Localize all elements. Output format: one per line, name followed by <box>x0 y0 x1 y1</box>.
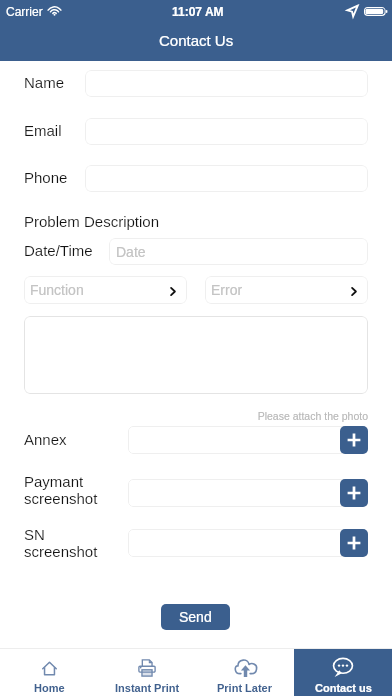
button[interactable]: Contact us <box>294 649 392 696</box>
button[interactable]: Home <box>0 649 98 696</box>
staticText: Problem Description <box>24 213 160 230</box>
staticText: Email <box>24 122 62 139</box>
button[interactable] <box>85 118 368 145</box>
button[interactable]: Function <box>24 276 187 304</box>
staticText: Function <box>30 282 84 298</box>
button[interactable] <box>24 316 368 394</box>
staticText: Please attach the photo <box>0 410 368 422</box>
button[interactable] <box>128 426 368 454</box>
button[interactable] <box>85 165 368 192</box>
staticText: Phone <box>24 169 68 186</box>
button[interactable] <box>128 529 368 557</box>
staticText: 11:07 AM <box>172 5 224 18</box>
button[interactable]: Add attachment <box>340 529 368 557</box>
staticText: SN <box>24 526 45 543</box>
staticText: screenshot <box>24 490 98 507</box>
staticText: Date <box>116 244 146 260</box>
button[interactable]: Add attachment <box>340 479 368 507</box>
button[interactable]: Send <box>161 604 230 630</box>
staticText: Date/Time <box>24 242 93 259</box>
button[interactable]: Error <box>205 276 368 304</box>
button[interactable]: Add attachment <box>340 426 368 454</box>
button[interactable]: Instant Print <box>98 649 196 696</box>
staticText: Print Later <box>217 682 273 694</box>
button[interactable] <box>85 70 368 97</box>
staticText: Contact us <box>315 682 372 694</box>
staticText: Contact Us <box>159 32 234 49</box>
staticText: screenshot <box>24 543 98 560</box>
staticText: Carrier <box>6 5 43 18</box>
button[interactable]: Print Later <box>196 649 294 696</box>
staticText: Annex <box>24 431 67 448</box>
staticText: Send <box>179 609 212 625</box>
staticText: Instant Print <box>115 682 180 694</box>
button[interactable] <box>128 479 368 507</box>
staticText: Error <box>211 282 243 298</box>
staticText: Name <box>24 74 65 91</box>
staticText: Home <box>34 682 65 694</box>
staticText: Paymant <box>24 473 84 490</box>
button[interactable]: Date <box>109 238 368 265</box>
